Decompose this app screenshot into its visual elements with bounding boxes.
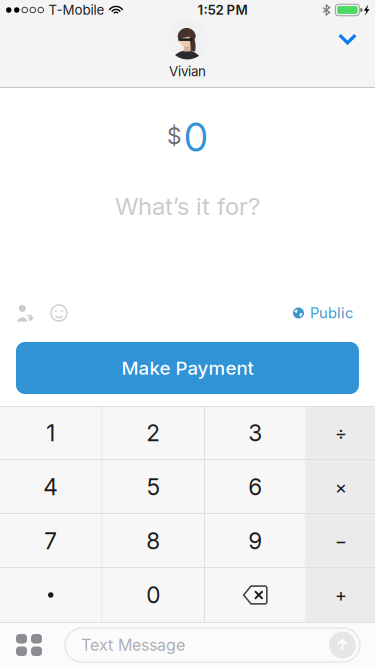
- button[interactable]: 5: [102, 460, 204, 514]
- button[interactable]: 2: [102, 406, 204, 460]
- staticText: Public: [310, 304, 353, 322]
- button[interactable]: Apps: [0, 623, 65, 667]
- button[interactable]: 6: [205, 460, 305, 514]
- button[interactable]: Decimal point: [0, 568, 101, 622]
- button[interactable]: −: [306, 514, 375, 568]
- staticText: 2: [146, 419, 160, 447]
- button[interactable]: ÷: [306, 406, 375, 460]
- button[interactable]: 1: [0, 406, 101, 460]
- staticText: Vivian: [169, 63, 206, 79]
- staticText: $: [167, 122, 181, 150]
- button[interactable]: Public: [293, 304, 353, 322]
- staticText: −: [335, 530, 347, 552]
- staticText: 1: [46, 419, 55, 447]
- button[interactable]: Send: [327, 629, 358, 660]
- button[interactable]: +: [306, 568, 375, 622]
- button[interactable]: 9: [205, 514, 305, 568]
- button[interactable]: 7: [0, 514, 101, 568]
- staticText: 4: [43, 473, 58, 501]
- staticText: Make Payment: [121, 357, 253, 379]
- button[interactable]: Add person: [16, 304, 34, 322]
- button[interactable]: 4: [0, 460, 101, 514]
- staticText: +: [335, 584, 347, 606]
- button[interactable]: ×: [306, 460, 375, 514]
- staticText: 5: [147, 473, 160, 501]
- button[interactable]: Delete: [205, 568, 305, 622]
- staticText: Text Message: [81, 635, 185, 655]
- staticText: ×: [335, 476, 347, 498]
- button[interactable]: 8: [102, 514, 204, 568]
- staticText: 0: [146, 581, 160, 609]
- staticText: 6: [248, 473, 262, 501]
- staticText: 1:52 PM: [197, 2, 247, 18]
- staticText: 9: [248, 527, 262, 555]
- staticText: T-Mobile: [48, 2, 104, 18]
- staticText: 8: [146, 527, 160, 555]
- staticText: 0: [184, 114, 208, 161]
- button[interactable]: Make Payment: [16, 342, 359, 394]
- staticText: 7: [44, 527, 57, 555]
- button[interactable]: 0: [102, 568, 204, 622]
- staticText: 3: [248, 419, 262, 447]
- button[interactable]: Collapse: [320, 19, 375, 68]
- button[interactable]: 3: [205, 406, 305, 460]
- staticText: What’s it for?: [115, 192, 260, 221]
- button[interactable]: Add emoji: [34, 304, 68, 322]
- staticText: ÷: [335, 422, 347, 444]
